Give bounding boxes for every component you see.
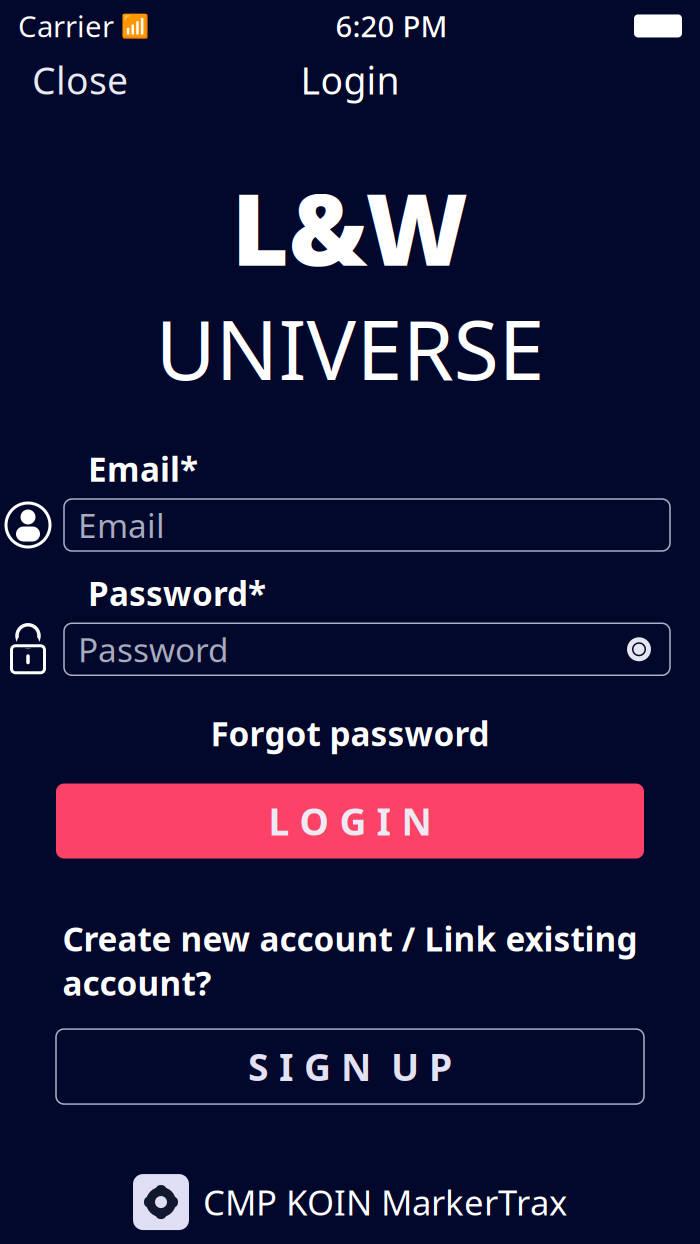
staticText: Email* [88,447,198,491]
staticText: Forgot password [210,711,489,756]
button[interactable]: S I G N U P [56,1029,644,1104]
staticText: 📶 [121,13,149,39]
staticText: Password* [88,571,266,615]
staticText: L&W [231,162,468,293]
staticText: UNIVERSE [155,293,544,403]
button[interactable]: Forgot password [194,705,505,762]
staticText: CMP KOIN MarkerTrax [203,1179,567,1225]
button[interactable]: Close [18,47,142,113]
button[interactable]: Password [64,623,670,675]
staticText: Create new account / Link existing accou… [62,916,637,1005]
staticText: Email [78,503,165,547]
button[interactable]: Email [64,499,670,551]
staticText: L O G I N [268,796,431,846]
staticText: Carrier [18,6,114,45]
staticText: Login [300,55,399,105]
staticText: S I G N U P [248,1042,452,1091]
staticText: Close [32,55,128,105]
button[interactable]: CMP KOIN MarkerTrax [133,1174,567,1230]
button[interactable]: L O G I N [56,783,644,858]
staticText: 6:20 PM [335,6,447,45]
staticText: Password [78,627,229,671]
